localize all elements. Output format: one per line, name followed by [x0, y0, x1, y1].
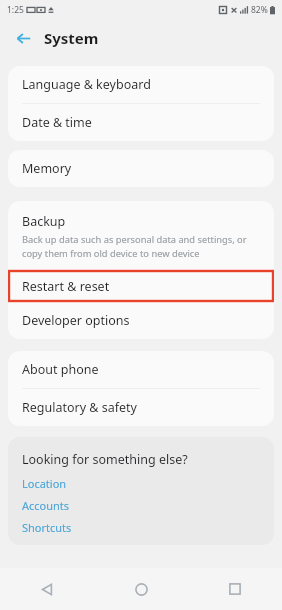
button[interactable]: Backup	[8, 201, 274, 270]
button[interactable]: About phone	[8, 351, 274, 388]
button[interactable]: Restart & reset	[8, 270, 274, 302]
staticText: Date & time	[22, 114, 92, 131]
staticText: Location	[22, 476, 67, 491]
staticText: Accounts	[22, 498, 70, 513]
button[interactable]: Back	[0, 568, 94, 610]
staticText: Developer options	[22, 312, 130, 329]
button[interactable]: Date & time	[8, 104, 274, 141]
staticText: Language & keyboard	[22, 76, 151, 93]
button[interactable]: Shortcuts	[22, 520, 72, 535]
staticText: 1:25	[7, 4, 24, 16]
button[interactable]: Back	[11, 26, 35, 50]
staticText: Shortcuts	[22, 520, 72, 535]
staticText: Back up data such as personal data and s…	[22, 233, 247, 246]
staticText: 82%	[251, 4, 268, 16]
button[interactable]: Developer options	[8, 302, 274, 339]
staticText: Restart & reset	[22, 278, 110, 295]
button[interactable]: Language & keyboard	[8, 66, 274, 103]
staticText: Backup	[22, 213, 66, 230]
staticText: copy them from old device to new device	[22, 247, 200, 260]
button[interactable]: Accounts	[22, 498, 70, 513]
button[interactable]: Home	[94, 568, 188, 610]
staticText: Looking for something else?	[22, 451, 188, 468]
staticText: System	[44, 28, 99, 48]
button[interactable]: Memory	[8, 150, 274, 187]
button[interactable]: Regulatory & safety	[8, 389, 274, 426]
button[interactable]: Location	[22, 476, 67, 491]
button[interactable]: Recents	[188, 568, 282, 610]
staticText: Memory	[22, 160, 72, 177]
staticText: Regulatory & safety	[22, 399, 137, 416]
staticText: About phone	[22, 361, 99, 378]
